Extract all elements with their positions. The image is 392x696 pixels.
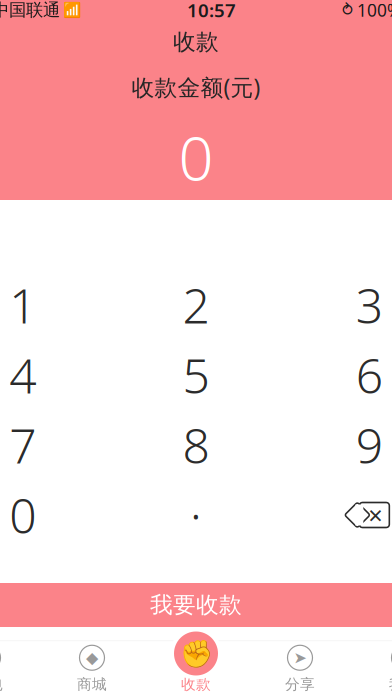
staticText: 8 [182, 413, 209, 477]
button[interactable]: · [109, 480, 283, 550]
button[interactable]: ● [352, 641, 392, 696]
button[interactable]: 0 [0, 480, 109, 550]
staticText: 收款 [181, 675, 211, 693]
button[interactable]: Delete [283, 480, 392, 550]
staticText: 1 [9, 273, 36, 337]
button[interactable]: 收款 [144, 641, 248, 696]
staticText: 6 [356, 343, 383, 407]
button[interactable]: 8 [109, 410, 283, 480]
staticText: 2 [182, 273, 209, 337]
button[interactable]: 2 [109, 270, 283, 340]
button[interactable]: 6 [283, 340, 392, 410]
staticText: 0 [9, 483, 36, 547]
button[interactable]: 9 [283, 410, 392, 480]
staticText: 收款金额(元) [131, 72, 260, 102]
staticText: 中国联通 [0, 0, 60, 21]
staticText: ◆ [86, 649, 98, 667]
staticText: 分享 [285, 675, 315, 693]
button[interactable]: ◆ [40, 641, 144, 696]
staticText: 10:57 [187, 0, 236, 22]
staticText: 9 [356, 413, 383, 477]
staticText: 0 [178, 116, 213, 197]
button[interactable]: 收款 [170, 627, 222, 679]
staticText: 📶 [63, 2, 81, 18]
staticText: 7 [9, 413, 36, 477]
staticText: ➤ [293, 649, 306, 667]
button[interactable]: 5 [109, 340, 283, 410]
staticText: ⥁ [342, 1, 353, 19]
staticText: ✊ [179, 638, 212, 669]
staticText: 100% [357, 0, 392, 21]
staticText: 钱包 [0, 675, 3, 693]
button[interactable]: 4 [0, 340, 109, 410]
staticText: 3 [356, 273, 383, 337]
button[interactable]: 我要收款 [0, 583, 392, 627]
staticText: 收款 [173, 28, 219, 56]
button[interactable]: 7 [0, 410, 109, 480]
staticText: × [368, 498, 382, 532]
staticText: 5 [182, 343, 209, 407]
button[interactable]: 1 [0, 270, 109, 340]
staticText: 商城 [77, 675, 107, 693]
staticText: 我的 [389, 675, 392, 693]
staticText: 4 [9, 343, 36, 407]
staticText: · [190, 483, 202, 547]
button[interactable]: ▭ [0, 641, 40, 696]
button[interactable]: 3 [283, 270, 392, 340]
staticText: 我要收款 [150, 591, 242, 619]
button[interactable]: ➤ [248, 641, 352, 696]
